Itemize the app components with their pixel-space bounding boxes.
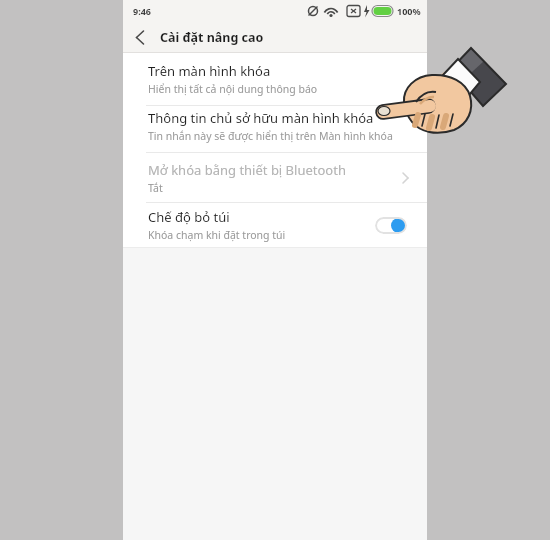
staticText: 9:46 bbox=[133, 5, 151, 17]
staticText: Hiển thị tất cả nội dung thông báo bbox=[148, 82, 318, 96]
staticText: Chế độ bỏ túi bbox=[148, 208, 230, 226]
staticText: Cài đặt nâng cao bbox=[160, 29, 264, 46]
button[interactable]: Trên màn hình khóa bbox=[123, 53, 427, 105]
button[interactable]: Chế độ bỏ túi bbox=[123, 203, 427, 247]
staticText: Trên màn hình khóa bbox=[148, 62, 271, 80]
staticText: Khóa chạm khi đặt trong túi bbox=[148, 228, 286, 242]
staticText: 100% bbox=[397, 5, 421, 17]
button[interactable] bbox=[123, 22, 157, 52]
button[interactable] bbox=[375, 217, 407, 234]
staticText: Mở khóa bằng thiết bị Bluetooth bbox=[148, 161, 346, 179]
staticText: Tắt bbox=[148, 181, 163, 195]
staticText: Tin nhắn này sẽ được hiển thị trên Màn h… bbox=[148, 129, 393, 143]
button[interactable]: Mở khóa bằng thiết bị Bluetooth bbox=[123, 153, 427, 202]
staticText: Thông tin chủ sở hữu màn hình khóa bbox=[148, 109, 374, 127]
button[interactable]: Thông tin chủ sở hữu màn hình khóa bbox=[123, 106, 427, 152]
